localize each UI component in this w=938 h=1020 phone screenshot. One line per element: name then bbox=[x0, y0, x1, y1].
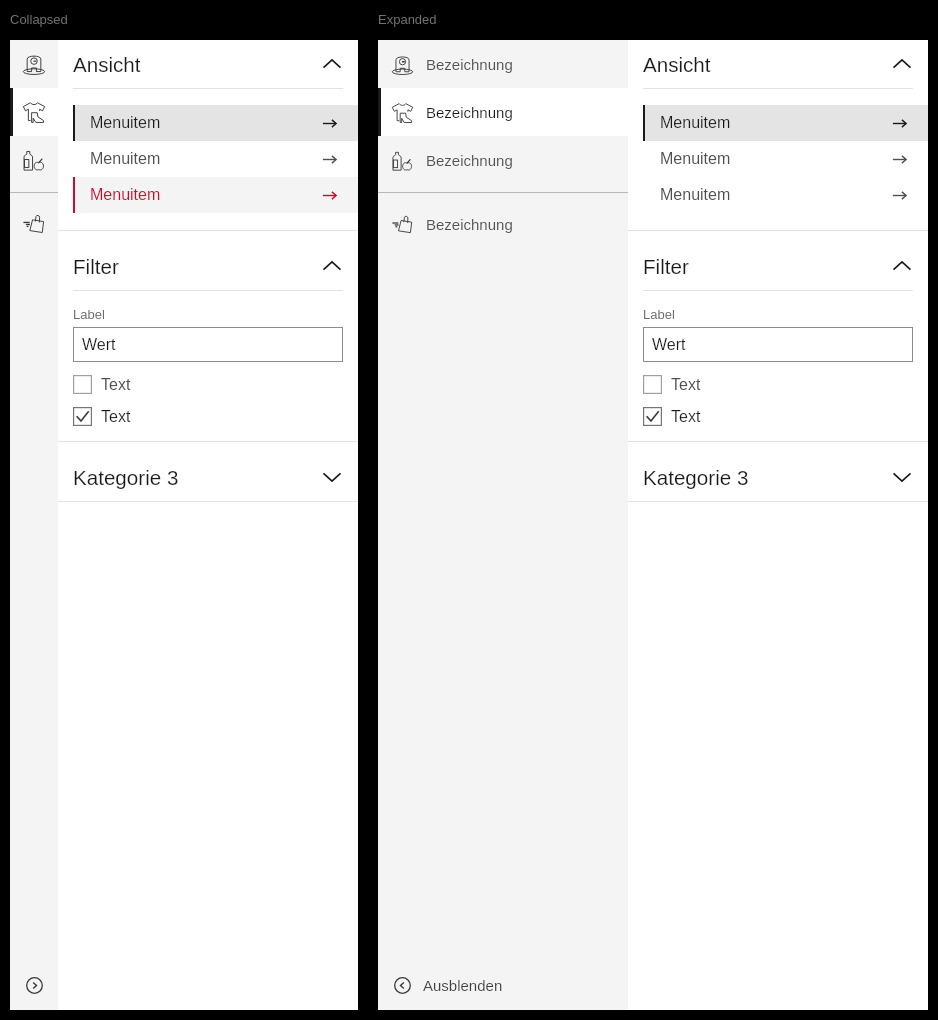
staticText: Bezeichnung bbox=[426, 56, 513, 73]
button[interactable]: Bezeichnung bbox=[378, 40, 628, 88]
button[interactable]: Menuitem bbox=[643, 105, 928, 141]
staticText: Text bbox=[671, 408, 701, 426]
button[interactable]: Text bbox=[73, 407, 131, 426]
button[interactable]: Bezeichnung bbox=[378, 88, 628, 136]
button[interactable]: Bezeichnung bbox=[10, 200, 58, 248]
staticText: Filter bbox=[643, 255, 689, 278]
staticText: Ansicht bbox=[73, 53, 141, 76]
button[interactable]: Bezeichnung bbox=[10, 40, 58, 88]
button[interactable]: Menuitem bbox=[643, 141, 928, 177]
button[interactable]: Bezeichnung bbox=[10, 88, 58, 136]
staticText: Ausblenden bbox=[423, 977, 503, 994]
button[interactable]: Ansicht bbox=[73, 40, 343, 88]
button[interactable]: Bezeichnung bbox=[10, 136, 58, 184]
staticText: Menuitem bbox=[660, 114, 731, 132]
button[interactable]: Ausblenden bbox=[378, 960, 628, 1010]
staticText: Kategorie 3 bbox=[643, 466, 749, 489]
staticText: Text bbox=[101, 408, 131, 426]
staticText: Kategorie 3 bbox=[73, 466, 179, 489]
button[interactable]: Bezeichnung bbox=[378, 136, 628, 184]
button[interactable]: Kategorie 3 bbox=[73, 453, 343, 501]
staticText: Filter bbox=[73, 255, 119, 278]
staticText: Collapsed bbox=[10, 12, 68, 27]
staticText: Menuitem bbox=[90, 186, 161, 204]
button[interactable]: Wert bbox=[73, 327, 343, 362]
button[interactable]: Einblenden bbox=[10, 960, 58, 1010]
staticText: Menuitem bbox=[90, 114, 161, 132]
button[interactable]: Menuitem bbox=[73, 177, 358, 213]
staticText: Bezeichnung bbox=[426, 152, 513, 169]
button[interactable]: Ansicht bbox=[643, 40, 913, 88]
staticText: Ansicht bbox=[643, 53, 711, 76]
staticText: Label bbox=[643, 307, 675, 322]
staticText: Menuitem bbox=[90, 150, 161, 168]
button[interactable]: Menuitem bbox=[73, 141, 358, 177]
button[interactable]: Text bbox=[73, 375, 131, 394]
button[interactable]: Menuitem bbox=[643, 177, 928, 213]
button[interactable]: Kategorie 3 bbox=[643, 453, 913, 501]
staticText: Bezeichnung bbox=[426, 216, 513, 233]
staticText: Label bbox=[73, 307, 105, 322]
staticText: Text bbox=[101, 376, 131, 394]
staticText: Wert bbox=[652, 336, 686, 354]
staticText: Menuitem bbox=[660, 186, 731, 204]
staticText: Expanded bbox=[378, 12, 437, 27]
button[interactable]: Filter bbox=[73, 242, 343, 290]
staticText: Wert bbox=[82, 336, 116, 354]
button[interactable]: Text bbox=[643, 407, 701, 426]
button[interactable]: Bezeichnung bbox=[378, 200, 628, 248]
staticText: Menuitem bbox=[660, 150, 731, 168]
button[interactable]: Filter bbox=[643, 242, 913, 290]
button[interactable]: Text bbox=[643, 375, 701, 394]
button[interactable]: Wert bbox=[643, 327, 913, 362]
button[interactable]: Menuitem bbox=[73, 105, 358, 141]
staticText: Bezeichnung bbox=[426, 104, 513, 121]
staticText: Text bbox=[671, 376, 701, 394]
